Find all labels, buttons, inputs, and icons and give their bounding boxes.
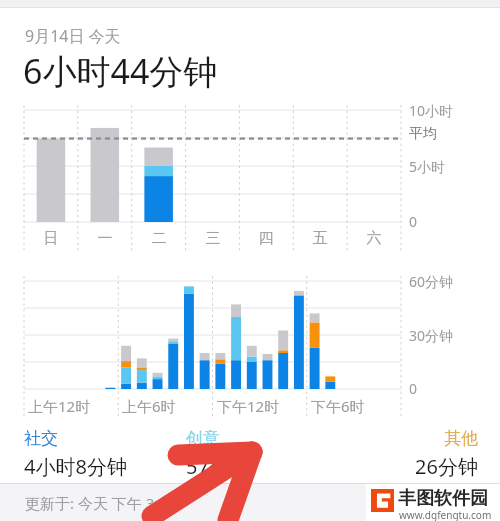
staticText: 9月14日 今天 [25,25,121,47]
button[interactable]: 其他 [348,428,478,480]
staticText: 57分钟 [186,453,348,480]
staticText: 五 [293,229,347,248]
staticText: 社交 [24,428,186,449]
staticText: 10小时 [409,101,454,120]
staticText: 一 [78,229,132,248]
other: Annotation arrow [0,0,500,521]
staticText: 四 [239,229,293,248]
staticText: 六 [347,229,401,248]
staticText: 三 [186,229,240,248]
button[interactable]: 创意 [186,428,348,480]
staticText: 日 [24,229,78,248]
staticText: 5小时 [409,157,446,176]
staticText: 下午6时 [311,396,365,416]
staticText: 26分钟 [348,453,478,480]
staticText: 6小时44分钟 [23,48,218,94]
staticText: 二 [132,229,186,248]
staticText: 上午6时 [122,396,176,416]
staticText: 更新于: 今天 下午 3:14 [25,493,176,513]
staticText: 0 [409,379,418,398]
staticText: 4小时8分钟 [24,453,186,480]
staticText: 0 [409,212,418,231]
staticText: 30分钟 [409,326,454,345]
staticText: 创意 [186,428,348,449]
staticText: 其他 [348,428,478,449]
staticText: 60分钟 [409,272,454,291]
staticText: www.dgfengtu.com [399,508,492,521]
staticText: 丰图软件园 [398,487,488,510]
staticText: 平均 [409,125,437,143]
staticText: 下午12时 [217,396,280,416]
button[interactable]: 社交 [24,428,186,480]
staticText: 上午12时 [28,396,91,416]
other: Logo [371,489,394,512]
